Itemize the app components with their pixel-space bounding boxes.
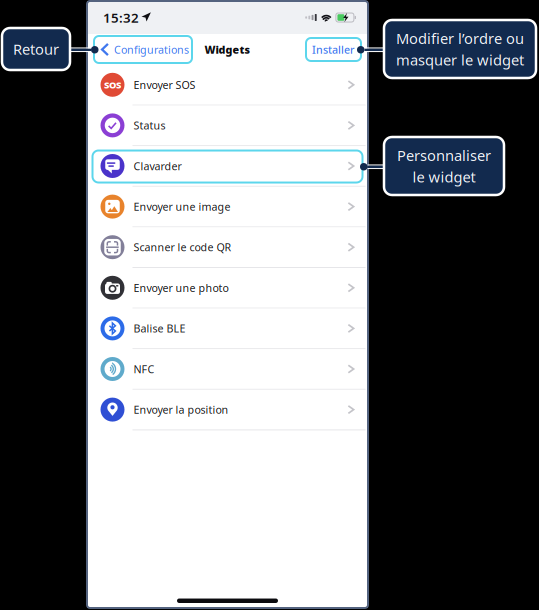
staticText: Personnaliser (397, 145, 491, 165)
staticText: Configurations (114, 42, 189, 57)
staticText: le widget (412, 167, 475, 186)
button[interactable]: Configurations (94, 36, 192, 63)
staticText: Status (133, 118, 165, 132)
staticText: Widgets (204, 42, 250, 57)
staticText: Retour (13, 39, 59, 59)
button[interactable]: Envoyer une photo (89, 268, 365, 309)
staticText: Envoyer SOS (133, 78, 195, 92)
staticText: Clavarder (133, 159, 181, 173)
staticText: 15:32 (103, 9, 139, 26)
button[interactable]: Status (89, 106, 365, 146)
staticText: Envoyer une photo (133, 281, 228, 295)
staticText: Modifier l’ordre ou (396, 28, 524, 48)
button[interactable]: NFC (89, 349, 365, 390)
button[interactable]: Scanner le code QR (89, 227, 365, 268)
button[interactable]: Envoyer la position (89, 390, 365, 430)
staticText: Scanner le code QR (133, 240, 231, 254)
button[interactable]: Balise BLE (89, 309, 365, 349)
button[interactable]: SOS (89, 65, 365, 106)
staticText: SOS (104, 79, 121, 91)
staticText: NFC (133, 362, 154, 376)
staticText: Installer (312, 42, 355, 57)
staticText: Envoyer une image (133, 199, 230, 214)
button[interactable]: Envoyer une image (89, 187, 365, 227)
staticText: Envoyer la position (133, 402, 228, 417)
staticText: Balise BLE (133, 321, 185, 335)
button[interactable]: Clavarder (89, 146, 365, 187)
button[interactable]: Installer (306, 38, 361, 61)
staticText: masquer le widget (396, 50, 524, 69)
